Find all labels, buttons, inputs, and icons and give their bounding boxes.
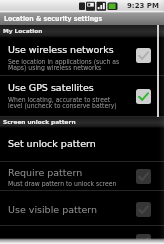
staticText: Require pattern [8,167,83,178]
staticText: See location in applications (such as Ma… [8,58,120,72]
button[interactable]: Use visible pattern [0,191,164,226]
other: Unchecked [136,169,151,184]
staticText: Location & security settings [4,15,103,22]
staticText: Use wireless networks [8,44,114,55]
staticText: My Location [3,28,43,35]
other: Checked [136,89,151,104]
other: Unchecked [136,234,151,244]
staticText: Set unlock pattern [8,138,96,149]
staticText: Use GPS satellites [8,82,94,93]
staticText: 9:23 PM [127,2,159,10]
button[interactable]: Use wireless networks [0,38,164,76]
other: Unchecked [136,202,151,217]
staticText: When locating, accurate to street level … [8,96,117,110]
button[interactable]: Require pattern [0,162,164,191]
staticText: Must draw pattern to unlock screen [8,180,117,187]
staticText: Use visible pattern [8,204,98,215]
other: Unchecked [136,48,151,63]
button[interactable]: Set unlock pattern [0,128,164,162]
button[interactable]: Use GPS satellites [0,76,164,117]
button[interactable]: Unchecked [0,226,164,244]
staticText: Screen unlock pattern [3,119,76,126]
